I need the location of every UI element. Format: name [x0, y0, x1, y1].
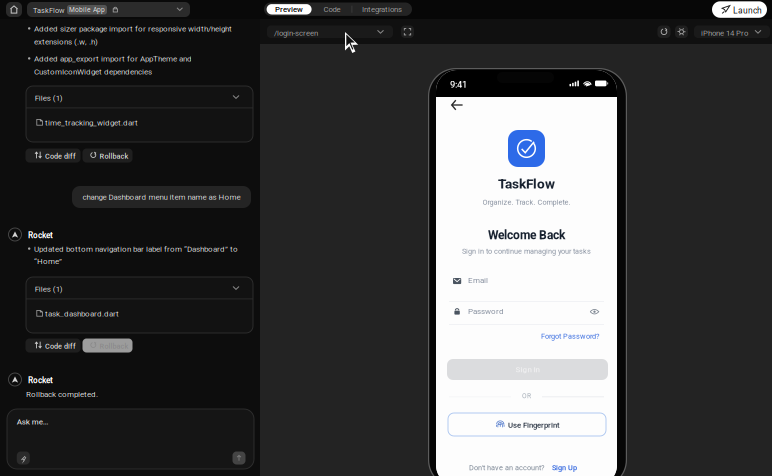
staticText: CustomIconWidget dependencies [34, 67, 152, 77]
button[interactable]: Rollback [82, 338, 132, 352]
staticText: Ask me… [17, 417, 49, 426]
staticText: Sign Up [552, 463, 577, 472]
staticText: Password [468, 306, 504, 316]
staticText: Rocket [28, 230, 53, 240]
staticText: Rollback completed. [26, 389, 98, 399]
button[interactable]: TaskFlow [27, 2, 190, 17]
button[interactable]: Show password [590, 309, 599, 314]
button[interactable]: Code diff [25, 148, 80, 162]
staticText: Files (1) [35, 93, 63, 103]
staticText: TaskFlow [498, 176, 555, 192]
staticText: Added app_export import for AppTheme and [34, 54, 192, 64]
staticText: Rocket [28, 375, 53, 385]
button[interactable]: Fit to screen [401, 25, 414, 38]
staticText: Email [468, 275, 488, 285]
button[interactable]: Code [316, 4, 348, 14]
staticText: Forgot Password? [541, 332, 599, 341]
button[interactable]: Rollback [82, 148, 132, 162]
button[interactable]: Reload [657, 25, 670, 38]
staticText: Code [323, 5, 340, 14]
staticText: iPhone 14 Pro [701, 29, 748, 38]
staticText: Rollback [99, 152, 128, 160]
staticText: Added sizer package import for responsiv… [34, 24, 232, 34]
button[interactable]: iPhone 14 Pro [694, 25, 770, 38]
button[interactable]: Sign Up [552, 463, 577, 472]
button[interactable]: Back [451, 99, 463, 111]
button[interactable]: Forgot Password? [541, 332, 599, 341]
button[interactable]: Preview [267, 4, 312, 14]
staticText: Launch [733, 6, 762, 16]
button[interactable]: Launch [712, 1, 767, 18]
staticText: /login-screen [274, 29, 318, 38]
button[interactable]: Home [6, 2, 22, 17]
staticText: Updated bottom navigation bar label from… [34, 244, 238, 254]
staticText: Sign in to continue managing your tasks [462, 247, 591, 256]
staticText: Integrations [362, 5, 402, 14]
staticText: Don't have an account? [469, 463, 544, 472]
staticText: Organize. Track. Complete. [482, 198, 570, 207]
staticText: “Home” [34, 257, 62, 266]
staticText: Use Fingerprint [508, 420, 560, 430]
staticText: Code diff [45, 342, 76, 350]
button[interactable]: Sign In [447, 359, 608, 380]
staticText: Preview [275, 5, 303, 14]
staticText: Mobile App [69, 6, 105, 14]
staticText: extensions (.w, .h) [34, 37, 98, 47]
staticText: change Dashboard menu item name as Home [82, 192, 240, 202]
staticText: Sign In [515, 365, 539, 374]
staticText: time_tracking_widget.dart [45, 118, 138, 127]
button[interactable]: Send [232, 451, 245, 464]
staticText: OR [522, 392, 531, 400]
button[interactable]: Integrations [357, 4, 407, 14]
staticText: task_dashboard.dart [45, 309, 119, 318]
staticText: Code diff [45, 152, 76, 160]
staticText: TaskFlow [33, 6, 65, 15]
button[interactable]: Attach file [17, 451, 30, 464]
staticText: 9:41 [450, 79, 467, 90]
staticText: Welcome Back [488, 228, 565, 242]
staticText: Rollback [99, 342, 128, 350]
button[interactable]: Settings [675, 25, 688, 38]
button[interactable]: /login-screen [267, 25, 393, 38]
button[interactable]: Use Fingerprint [448, 413, 606, 436]
button[interactable]: Code diff [25, 338, 80, 352]
staticText: Files (1) [35, 284, 63, 294]
